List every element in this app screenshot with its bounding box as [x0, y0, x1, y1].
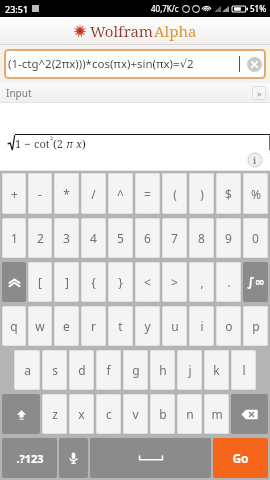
- button[interactable]: 3: [54, 218, 79, 258]
- staticText: n: [186, 406, 194, 422]
- staticText: e: [63, 318, 70, 334]
- staticText: <: [144, 274, 151, 290]
- staticText: 7: [171, 230, 178, 246]
- button[interactable]: 6: [135, 218, 160, 258]
- staticText: 8: [198, 230, 205, 246]
- button[interactable]: f: [96, 350, 121, 390]
- button[interactable]: 0: [243, 218, 268, 258]
- button[interactable]: /: [81, 173, 106, 214]
- staticText: %: [251, 186, 261, 202]
- button[interactable]: Information: [248, 153, 262, 167]
- button[interactable]: Shift: [2, 394, 40, 434]
- button[interactable]: Expand input: [252, 86, 266, 100]
- button[interactable]: m: [204, 394, 229, 434]
- staticText: (2: [53, 136, 66, 151]
- staticText: ∫∞: [247, 275, 265, 289]
- button[interactable]: %: [243, 173, 268, 214]
- button[interactable]: 5: [108, 218, 133, 258]
- staticText: =: [144, 186, 151, 202]
- button[interactable]: g: [123, 350, 148, 390]
- staticText: Wolfram: [90, 21, 154, 41]
- button[interactable]: c: [96, 394, 121, 434]
- staticText: 6: [144, 230, 151, 246]
- button[interactable]: [: [28, 262, 52, 302]
- button[interactable]: Clear input: [247, 57, 262, 72]
- button[interactable]: z: [42, 394, 67, 434]
- staticText: f: [106, 362, 111, 378]
- staticText: l: [242, 362, 246, 378]
- button[interactable]: Go: [213, 438, 268, 478]
- staticText: q: [10, 318, 18, 334]
- button[interactable]: 1: [2, 218, 26, 258]
- button[interactable]: .: [216, 262, 241, 302]
- button[interactable]: ,: [189, 262, 214, 302]
- button[interactable]: x: [69, 394, 94, 434]
- staticText: d: [78, 362, 86, 378]
- staticText: t: [118, 318, 123, 334]
- button[interactable]: q: [2, 306, 26, 346]
- staticText: Input: [6, 86, 32, 100]
- button[interactable]: o: [216, 306, 241, 346]
- staticText: m: [211, 406, 223, 422]
- button[interactable]: =: [135, 173, 160, 214]
- button[interactable]: u: [162, 306, 187, 346]
- staticText: .: [227, 274, 231, 290]
- button[interactable]: i: [189, 306, 214, 346]
- button[interactable]: Backspace: [231, 394, 268, 434]
- button[interactable]: Voice input: [59, 438, 88, 478]
- button[interactable]: 8: [189, 218, 214, 258]
- button[interactable]: r: [81, 306, 106, 346]
- staticText: i: [253, 154, 257, 166]
- button[interactable]: Space: [90, 438, 211, 478]
- staticText: b: [159, 406, 167, 422]
- button[interactable]: 9: [216, 218, 241, 258]
- button[interactable]: n: [177, 394, 202, 434]
- button[interactable]: More symbols: [2, 262, 26, 302]
- staticText: »: [257, 87, 262, 99]
- button[interactable]: p: [243, 306, 268, 346]
- staticText: h: [159, 362, 167, 378]
- button[interactable]: e: [54, 306, 79, 346]
- staticText: 23:51: [5, 3, 29, 15]
- staticText: 4: [90, 230, 97, 246]
- button[interactable]: s: [42, 350, 67, 390]
- button[interactable]: j: [177, 350, 202, 390]
- button[interactable]: v: [123, 394, 148, 434]
- button[interactable]: k: [204, 350, 229, 390]
- button[interactable]: w: [28, 306, 52, 346]
- staticText: ,: [200, 274, 204, 290]
- button[interactable]: h: [150, 350, 175, 390]
- button[interactable]: ): [189, 173, 214, 214]
- button[interactable]: d: [69, 350, 94, 390]
- button[interactable]: $: [216, 173, 241, 214]
- button[interactable]: ]: [54, 262, 79, 302]
- button[interactable]: 7: [162, 218, 187, 258]
- button[interactable]: 2: [28, 218, 52, 258]
- staticText: -: [38, 186, 42, 202]
- staticText: 1: [11, 230, 18, 246]
- button[interactable]: (: [162, 173, 187, 214]
- button[interactable]: *: [54, 173, 79, 214]
- staticText: (: [173, 186, 177, 202]
- button[interactable]: <: [135, 262, 160, 302]
- button[interactable]: +: [2, 173, 26, 214]
- button[interactable]: ∫∞: [243, 262, 268, 302]
- staticText: j: [188, 362, 192, 378]
- button[interactable]: ^: [108, 173, 133, 214]
- button[interactable]: b: [150, 394, 175, 434]
- button[interactable]: -: [28, 173, 52, 214]
- button[interactable]: {: [81, 262, 106, 302]
- button[interactable]: }: [108, 262, 133, 302]
- button[interactable]: t: [108, 306, 133, 346]
- staticText: ]: [65, 274, 69, 290]
- button[interactable]: .?123: [2, 438, 57, 478]
- staticText: *: [63, 186, 70, 202]
- button[interactable]: >: [162, 262, 187, 302]
- button[interactable]: 4: [81, 218, 106, 258]
- button[interactable]: y: [135, 306, 160, 346]
- button[interactable]: a: [14, 350, 40, 390]
- staticText: k: [213, 362, 220, 378]
- button[interactable]: l: [231, 350, 256, 390]
- button[interactable]: (1-ctg^2(2πx)))*cos(πx)+sin(πx)=√2: [4, 49, 266, 79]
- staticText: ^: [117, 186, 124, 202]
